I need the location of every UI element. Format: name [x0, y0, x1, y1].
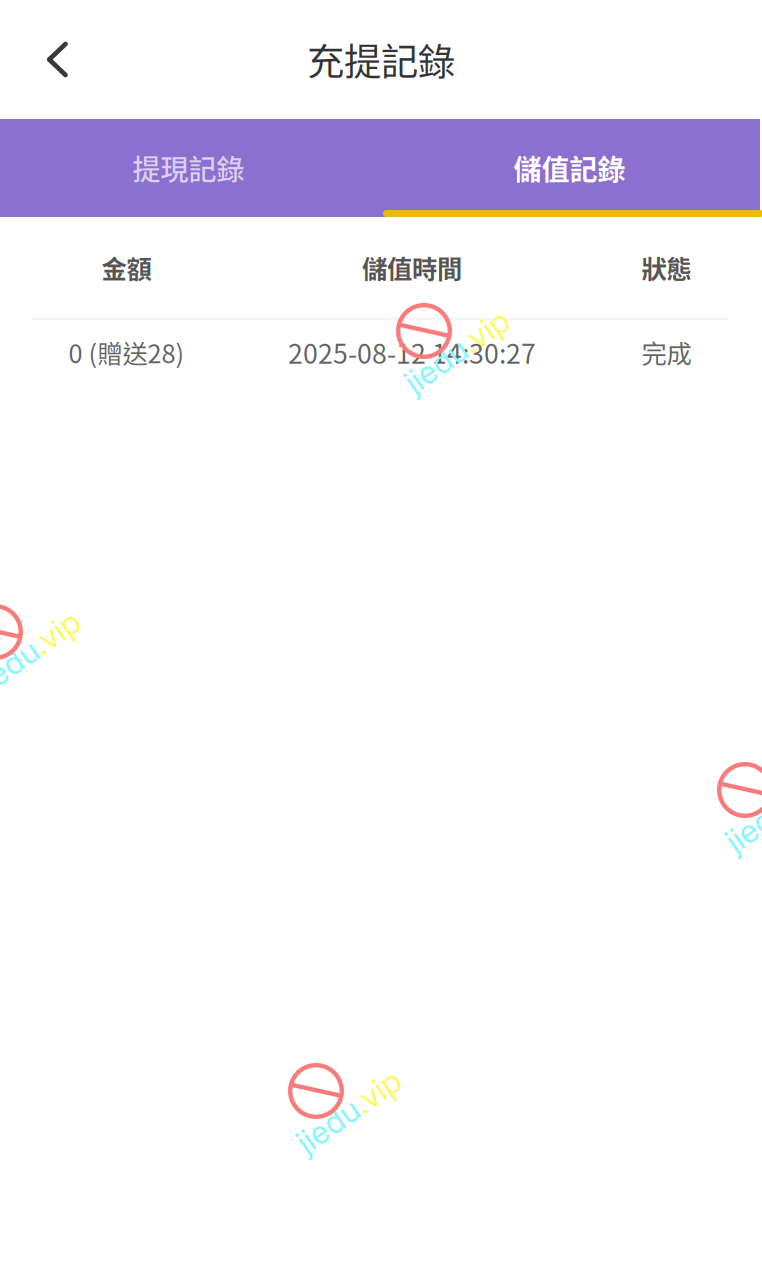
staticText: 0 (贈送28): [68, 334, 184, 370]
staticText: 儲值時間: [362, 249, 462, 286]
staticText: 儲值記錄: [513, 148, 625, 188]
staticText: .vip: [358, 1092, 409, 1130]
staticText: 2025-08-12 14:30:27: [288, 333, 536, 371]
button[interactable]: 提現記錄: [0, 119, 379, 217]
staticText: 充提記錄: [307, 32, 455, 87]
staticText: 提現記錄: [132, 148, 244, 188]
staticText: 完成: [641, 334, 691, 370]
button[interactable]: Back: [0, 0, 115, 119]
button[interactable]: 儲值記錄: [379, 119, 760, 217]
staticText: jiedu: [0, 633, 37, 671]
staticText: .vip: [37, 633, 88, 671]
staticText: jiedu: [289, 1092, 358, 1130]
staticText: jiedu: [397, 332, 466, 370]
staticText: jiedu: [718, 791, 762, 829]
staticText: 狀態: [641, 249, 691, 286]
staticText: .vip: [466, 332, 517, 370]
staticText: 金額: [101, 249, 151, 286]
